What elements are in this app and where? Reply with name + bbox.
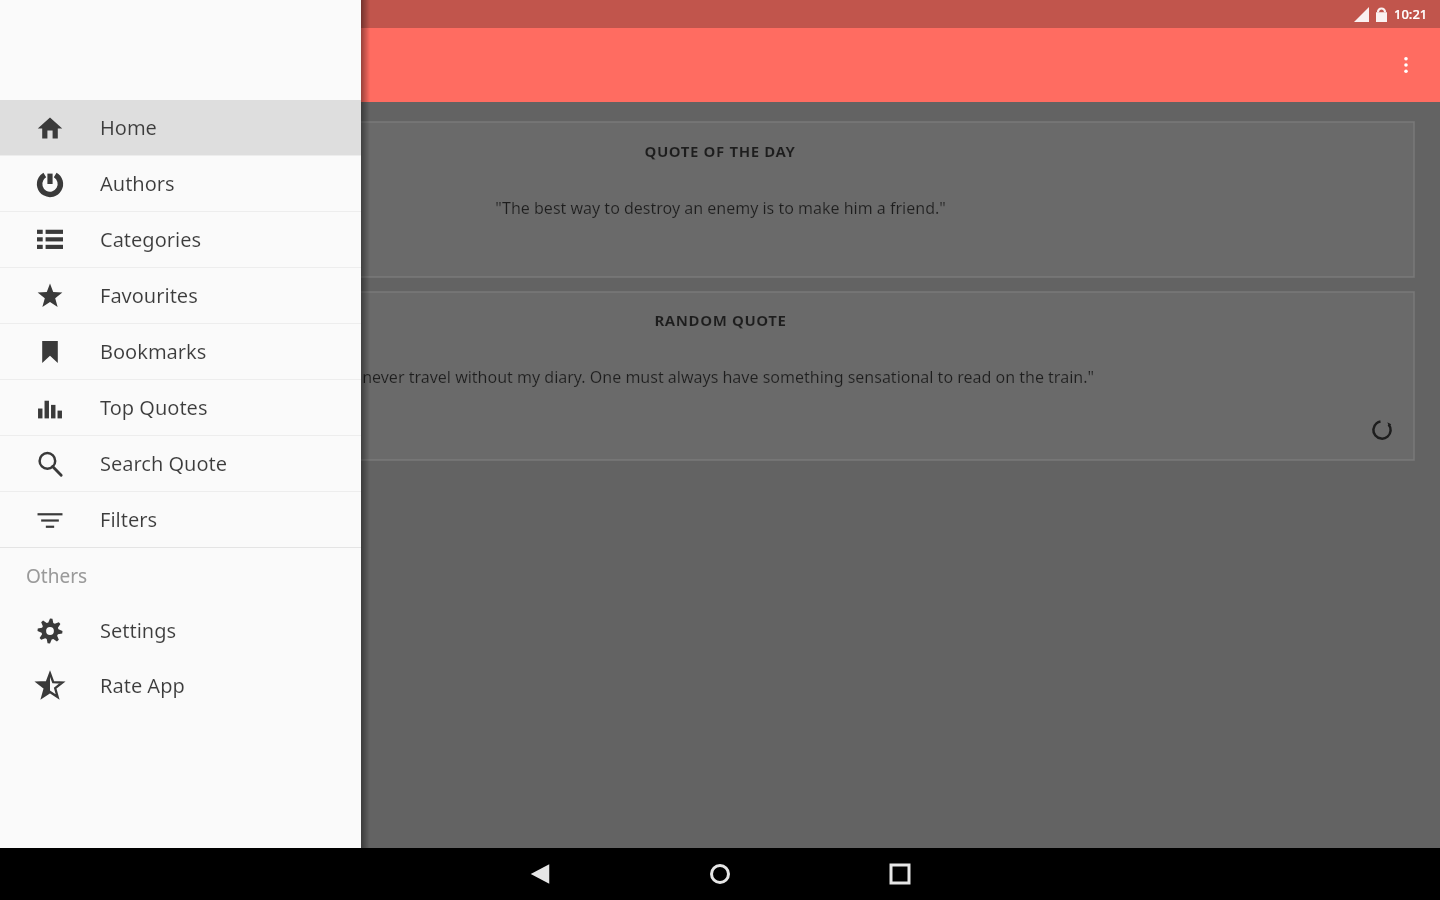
button[interactable]: Home bbox=[696, 850, 744, 898]
button[interactable]: Top Quotes bbox=[0, 380, 361, 435]
button[interactable]: Rate App bbox=[0, 658, 361, 713]
staticText: Others bbox=[26, 563, 88, 589]
button[interactable]: Authors bbox=[0, 156, 361, 211]
button[interactable]: Bookmarks bbox=[0, 324, 361, 379]
staticText: Rate App bbox=[100, 672, 185, 699]
button[interactable]: More options bbox=[1382, 41, 1430, 89]
button[interactable]: RANDOM QUOTE bbox=[26, 292, 1414, 460]
staticText: Settings bbox=[100, 617, 177, 644]
button[interactable]: QUOTE OF THE DAY bbox=[26, 122, 1414, 277]
staticText: Authors bbox=[100, 170, 175, 197]
button[interactable]: Back bbox=[516, 850, 564, 898]
staticText: Filters bbox=[100, 506, 158, 533]
button[interactable]: Refresh quote bbox=[1360, 408, 1404, 452]
staticText: QUOTE OF THE DAY bbox=[644, 141, 796, 161]
staticText: "The best way to destroy an enemy is to … bbox=[495, 197, 946, 219]
staticText: RANDOM QUOTE bbox=[654, 310, 787, 330]
staticText: Favourites bbox=[100, 282, 198, 309]
button[interactable]: Recent apps bbox=[876, 850, 924, 898]
staticText: 10:21 bbox=[1394, 5, 1428, 23]
button[interactable]: Favourites bbox=[0, 268, 361, 323]
staticText: Top Quotes bbox=[100, 394, 208, 421]
button[interactable]: Categories bbox=[0, 212, 361, 267]
staticText: Home bbox=[100, 114, 157, 141]
staticText: "I never travel without my diary. One mu… bbox=[346, 366, 1094, 388]
staticText: Search Quote bbox=[100, 450, 228, 477]
button[interactable]: Home bbox=[0, 100, 361, 155]
button[interactable]: Settings bbox=[0, 603, 361, 658]
button[interactable]: Filters bbox=[0, 492, 361, 547]
staticText: Categories bbox=[100, 226, 202, 253]
staticText: Bookmarks bbox=[100, 338, 207, 365]
button[interactable]: Search Quote bbox=[0, 436, 361, 491]
